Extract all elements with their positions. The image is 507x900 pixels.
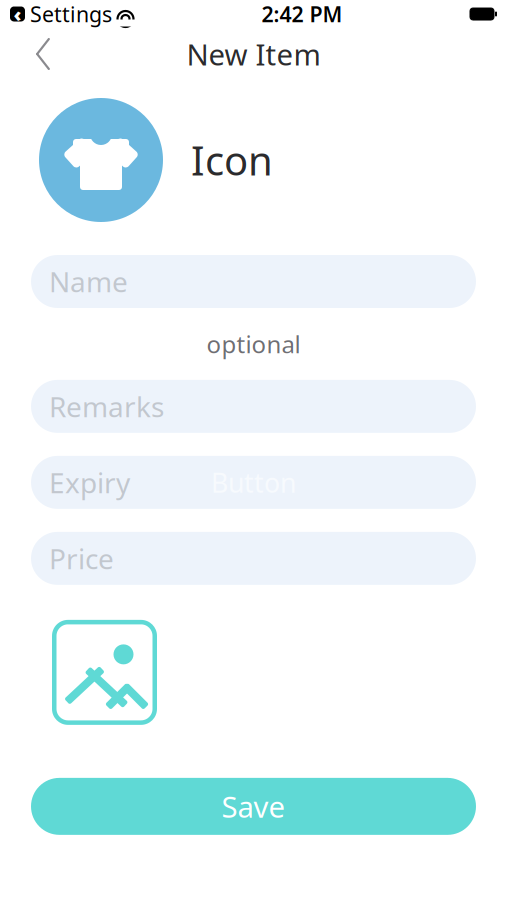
staticText: ‹ — [13, 1, 21, 27]
button[interactable]: Remarks — [31, 380, 476, 433]
button[interactable]: Price — [31, 532, 476, 585]
staticText: Name — [49, 263, 128, 300]
button[interactable]: Save — [31, 778, 476, 835]
button[interactable]: Back — [26, 32, 60, 76]
staticText: Icon — [191, 133, 273, 186]
staticText: Price — [49, 540, 114, 577]
staticText: Button — [211, 465, 296, 500]
button[interactable]: Button — [31, 456, 476, 509]
button[interactable]: Add photo — [52, 620, 157, 725]
staticText: Settings — [30, 0, 112, 28]
button[interactable]: Name — [31, 255, 476, 308]
staticText: Remarks — [49, 388, 164, 425]
staticText: New Item — [186, 34, 320, 73]
staticText: Save — [221, 787, 285, 826]
staticText: optional — [206, 328, 300, 360]
button[interactable]: Choose icon — [39, 98, 163, 222]
staticText: Expiry — [49, 464, 130, 501]
staticText: 2:42 PM — [261, 0, 342, 28]
